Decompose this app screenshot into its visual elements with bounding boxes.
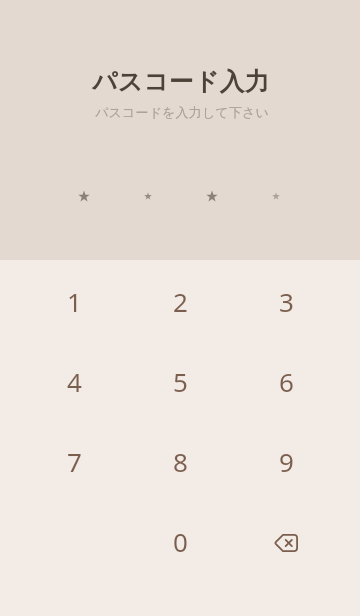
button[interactable]: 8 [127,423,233,503]
button[interactable]: 7 [21,423,127,503]
staticText: パスコードを入力して下さい [95,104,269,120]
button[interactable]: 3 [233,263,339,343]
staticText: 0 [173,524,188,559]
staticText: 8 [173,444,188,479]
staticText: 3 [279,284,294,319]
button[interactable]: Backspace [233,503,339,583]
button[interactable]: 4 [21,343,127,423]
staticText: 6 [279,364,294,399]
staticText: 5 [173,364,188,399]
staticText: 9 [279,444,294,479]
staticText: パスコード入力 [92,66,270,97]
button[interactable]: 5 [127,343,233,423]
button[interactable]: 0 [127,503,233,583]
staticText: 4 [67,364,82,399]
button[interactable]: 1 [21,263,127,343]
staticText: 1 [67,284,82,319]
button[interactable]: 6 [233,343,339,423]
button[interactable]: 2 [127,263,233,343]
staticText: 7 [67,444,82,479]
button[interactable]: 9 [233,423,339,503]
staticText: 2 [173,284,188,319]
